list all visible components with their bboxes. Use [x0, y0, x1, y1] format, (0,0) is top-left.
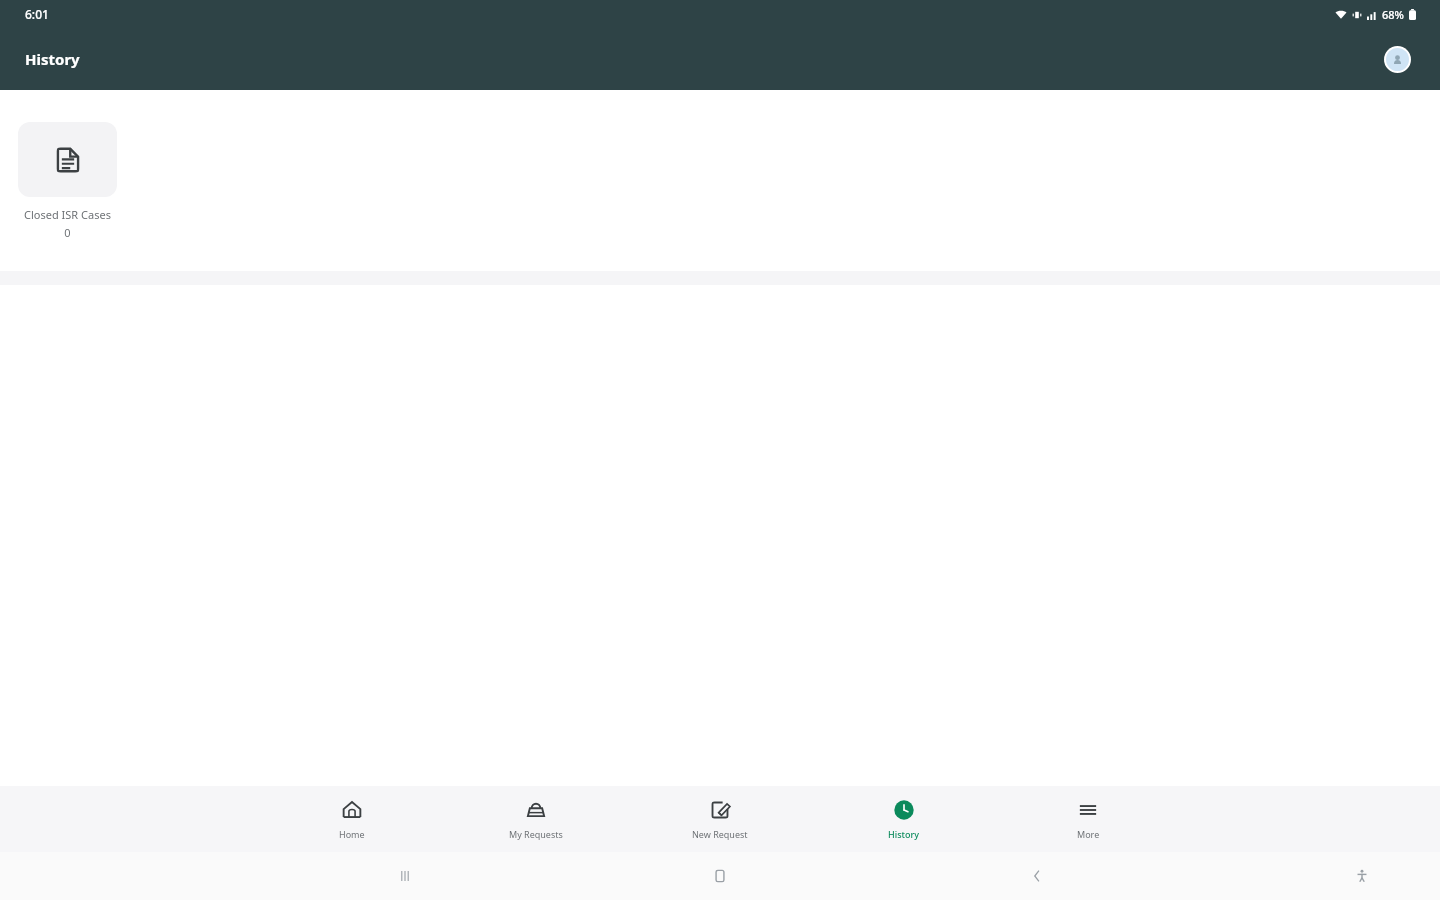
staticText: 68%	[1382, 7, 1404, 22]
staticText: My Requests	[509, 828, 563, 840]
button[interactable]: More	[996, 793, 1180, 846]
button[interactable]: New Request	[628, 793, 812, 846]
button[interactable]: Closed ISR Cases	[18, 122, 117, 240]
staticText: 6:01	[25, 6, 49, 22]
button[interactable]: Home	[260, 793, 444, 846]
button[interactable]: My Requests	[444, 793, 628, 846]
staticText: History	[888, 828, 920, 840]
button[interactable]: Accessibility	[1342, 856, 1382, 896]
button[interactable]: Recents	[385, 856, 425, 896]
staticText: More	[1077, 828, 1100, 840]
staticText: History	[25, 49, 80, 69]
staticText: Home	[339, 828, 365, 840]
button[interactable]: Account	[1386, 48, 1409, 71]
button[interactable]: History	[812, 793, 996, 846]
button[interactable]: Home	[700, 856, 740, 896]
staticText: Closed ISR Cases	[18, 207, 117, 222]
button[interactable]: Back	[1017, 856, 1057, 896]
staticText: New Request	[692, 828, 748, 840]
staticText: 0	[18, 225, 117, 240]
